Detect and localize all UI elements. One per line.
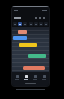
button[interactable]: Tasks [31, 73, 39, 81]
button[interactable] [13, 36, 27, 40]
button[interactable] [23, 22, 27, 26]
button[interactable] [23, 66, 45, 70]
button[interactable]: Home [13, 73, 21, 81]
button[interactable] [39, 22, 43, 26]
button[interactable] [29, 22, 33, 26]
button[interactable] [18, 30, 27, 34]
button[interactable] [28, 54, 46, 58]
button[interactable] [44, 22, 48, 26]
button[interactable] [18, 22, 22, 26]
button[interactable]: Calendar [22, 73, 30, 81]
button[interactable] [13, 22, 17, 26]
button[interactable]: Profile [40, 73, 48, 81]
button[interactable] [19, 43, 37, 47]
button[interactable] [34, 22, 38, 26]
